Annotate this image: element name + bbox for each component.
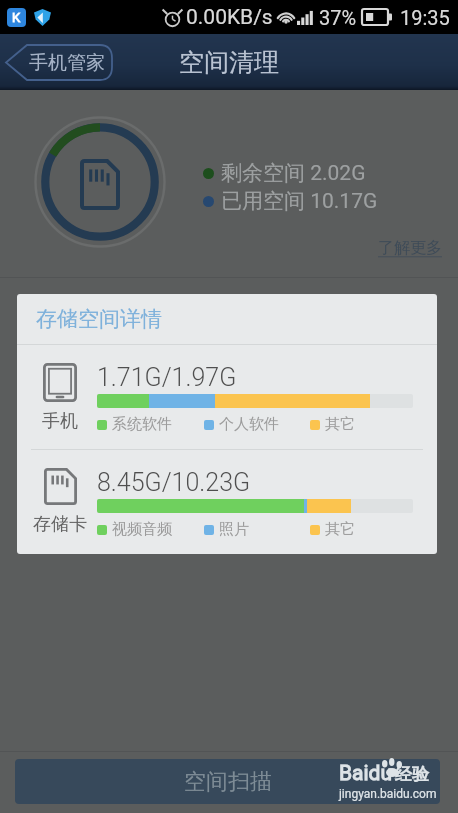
staticText: 手机 (42, 410, 78, 433)
staticText: 0.00KB/s (186, 5, 273, 30)
staticText: 存储空间详情 (36, 306, 162, 332)
button[interactable]: 返回 手机管家 (5, 44, 113, 81)
staticText: 经验 (395, 764, 429, 785)
staticText: 剩余空间 2.02G (221, 160, 366, 186)
staticText: 照片 (219, 520, 249, 539)
staticText: 已用空间 10.17G (221, 188, 378, 214)
staticText: 19:35 (400, 6, 450, 29)
staticText: 存储卡 (33, 513, 87, 536)
button[interactable]: 手机 (17, 345, 437, 449)
staticText: 视频音频 (112, 520, 172, 539)
staticText: 1.71G/1.97G (97, 363, 237, 392)
staticText: 空间扫描 (184, 768, 272, 796)
button[interactable]: 存储卡 (17, 450, 437, 554)
staticText: 其它 (325, 415, 355, 434)
staticText: 了解更多 (378, 238, 442, 258)
staticText: 37% (319, 6, 357, 29)
staticText: Baidu (339, 761, 393, 786)
staticText: 系统软件 (112, 415, 172, 434)
staticText: jingyan.baidu.com (339, 787, 437, 801)
staticText: 其它 (325, 520, 355, 539)
staticText: K (12, 10, 21, 25)
button[interactable]: 空间扫描 (15, 759, 440, 804)
staticText: 8.45G/10.23G (97, 468, 251, 497)
staticText: 手机管家 (29, 51, 105, 75)
button[interactable]: 了解更多 (378, 238, 442, 258)
staticText: 个人软件 (219, 415, 279, 434)
staticText: 空间清理 (179, 47, 279, 78)
